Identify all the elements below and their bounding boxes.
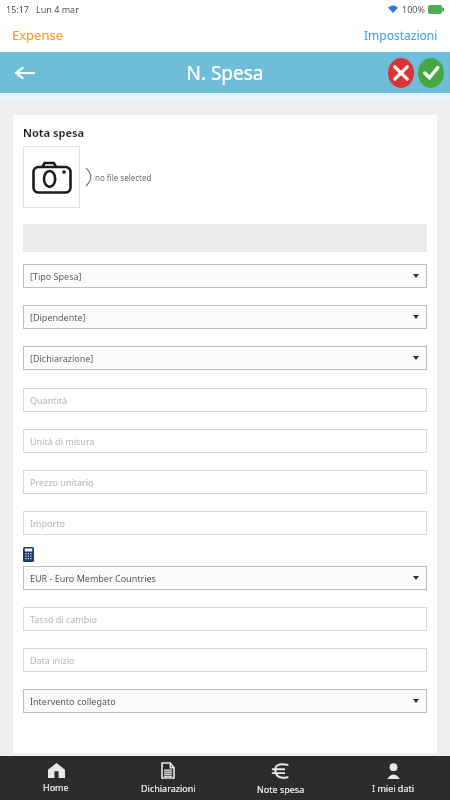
button[interactable]: Note spesa	[224, 756, 337, 800]
staticText: 15:17	[6, 3, 30, 15]
staticText: EUR - Euro Member Countries	[30, 572, 156, 584]
button[interactable]: Expense	[12, 26, 64, 44]
staticText: 100%	[402, 3, 425, 15]
staticText: Dichiarazioni	[141, 782, 196, 794]
button[interactable]: Unità di misura	[23, 429, 427, 453]
staticText: Lun 4 mar	[36, 3, 79, 15]
staticText: [Tipo Spesa]	[30, 270, 82, 282]
button[interactable]: [Tipo Spesa]	[23, 264, 427, 288]
staticText: Intervento collegato	[30, 695, 116, 707]
button[interactable]: Impostazioni	[364, 27, 438, 43]
button[interactable]: Prezzo unitario	[23, 470, 427, 494]
staticText: Note spesa	[257, 783, 305, 795]
staticText: [Dipendente]	[30, 311, 86, 323]
button[interactable]: Tasso di cambio	[23, 607, 427, 631]
button[interactable]: Intervento collegato	[23, 689, 427, 713]
button[interactable]: Cancel	[388, 58, 414, 88]
button[interactable]: Data inizio	[23, 648, 427, 672]
staticText: Prezzo unitario	[30, 476, 94, 488]
staticText: [Dichiarazione]	[30, 352, 94, 364]
button[interactable]: Importo	[23, 511, 427, 535]
button[interactable]: [Dichiarazione]	[23, 346, 427, 370]
staticText: Home	[43, 781, 69, 793]
staticText: Tasso di cambio	[30, 613, 98, 625]
button[interactable]: Take photo	[23, 146, 80, 208]
staticText: Data inizio	[30, 654, 75, 666]
button[interactable]: [Dipendente]	[23, 305, 427, 329]
staticText: no file selected	[95, 172, 152, 183]
button[interactable]: Home	[0, 756, 112, 800]
button[interactable]: Dichiarazioni	[112, 756, 224, 800]
button[interactable]: I miei dati	[337, 756, 450, 800]
button[interactable]: Quantità	[23, 388, 427, 412]
staticText: Unità di misura	[30, 435, 95, 447]
button[interactable]: Confirm	[418, 58, 444, 88]
button[interactable]: Back	[8, 56, 42, 90]
staticText: Nota spesa	[23, 125, 85, 140]
staticText: Importo	[30, 517, 65, 529]
button[interactable]: EUR - Euro Member Countries	[23, 566, 427, 590]
staticText: N. Spesa	[186, 60, 264, 86]
staticText: I miei dati	[372, 782, 415, 794]
staticText: Quantità	[30, 394, 68, 406]
